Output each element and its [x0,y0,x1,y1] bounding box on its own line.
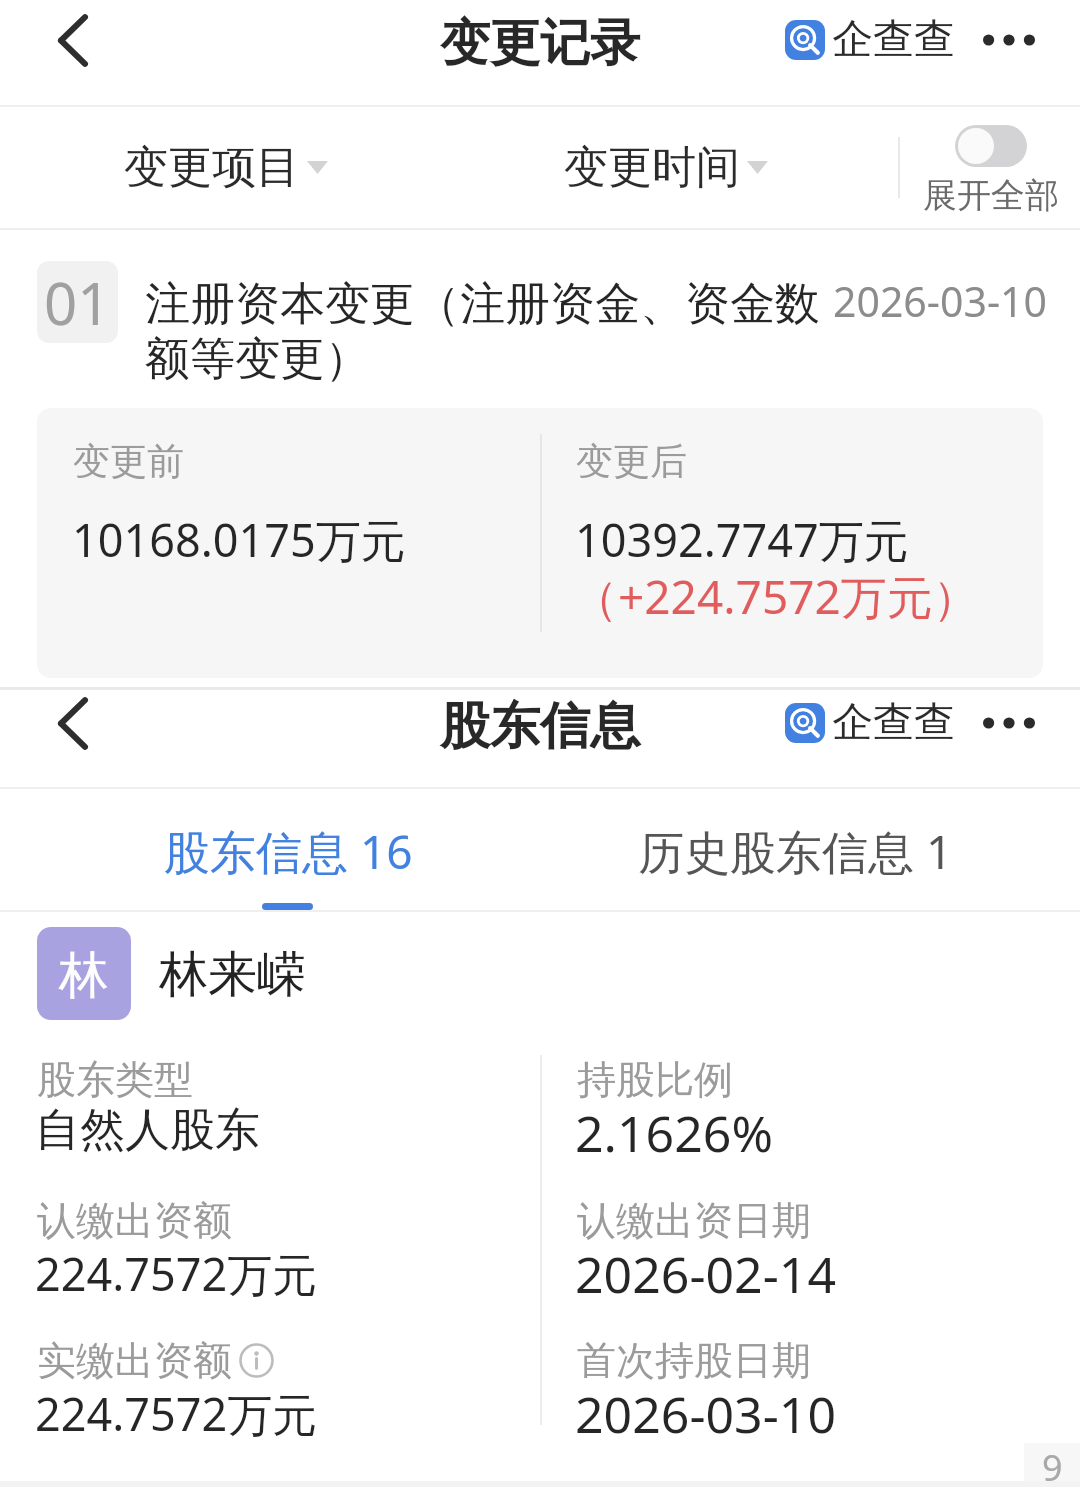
button[interactable]: 变更时间 [564,107,768,228]
staticText: 实缴出资额 [37,1336,232,1385]
staticText: 股东类型 [37,1055,193,1104]
staticText: 企查查 [832,14,955,66]
button[interactable]: 股东信息 16 [118,789,458,910]
staticText: 企查查 [832,697,955,749]
staticText: 9 [1042,1443,1063,1481]
button[interactable]: More options [959,5,1059,75]
staticText: 展开全部 [923,174,1059,217]
staticText: 持股比例 [577,1055,733,1104]
button[interactable]: More options [959,688,1059,758]
staticText: 认缴出资额 [37,1196,232,1245]
staticText: 变更时间 [564,140,740,195]
staticText: 林来嵘 [159,944,306,1006]
staticText: （+224.7572万元） [572,565,979,628]
staticText: 变更记录 [440,12,640,75]
button[interactable]: 历史股东信息 1 [625,789,965,910]
staticText: 10168.0175万元 [72,509,406,570]
staticText: 10392.7747万元 [575,509,909,570]
staticText: 林 [59,944,109,1007]
staticText: 2026-02-14 [575,1240,836,1308]
staticText: 224.7572万元 [35,1243,318,1304]
staticText: 变更前 [73,438,184,485]
staticText: 2026-03-10 [833,273,1048,329]
button[interactable]: 变更项目 [124,107,328,228]
staticText: 自然人股东 [35,1102,260,1159]
staticText: 224.7572万元 [35,1383,318,1444]
button[interactable]: Back [0,0,146,80]
staticText: 注册资本变更（注册资金、资金数额等变更） [145,276,833,387]
staticText: 股东信息 16 [164,820,413,883]
staticText: 2026-03-10 [575,1380,836,1448]
staticText: 2.1626% [575,1099,773,1167]
staticText: 历史股东信息 1 [638,820,953,883]
staticText: 变更项目 [124,140,300,195]
button[interactable]: 展开全部 [920,125,1062,217]
button[interactable]: Back [0,683,146,763]
staticText: 变更后 [576,438,687,485]
staticText: 首次持股日期 [577,1336,811,1385]
staticText: 股东信息 [440,695,640,758]
staticText: 01 [44,263,111,342]
staticText: 认缴出资日期 [577,1196,811,1245]
